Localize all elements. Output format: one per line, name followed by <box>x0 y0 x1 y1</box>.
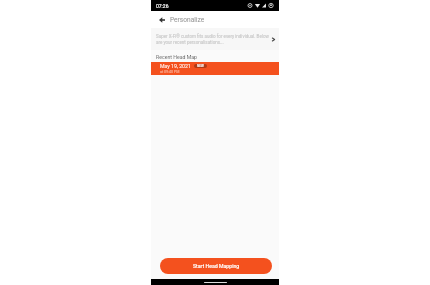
staticText: Start Head Mapping <box>193 263 240 269</box>
staticText: Recent Head Map <box>156 54 198 60</box>
button[interactable]: Super X-Fi® custom fits audio for every … <box>151 28 279 50</box>
staticText: May 19, 2021 <box>160 63 191 69</box>
button[interactable]: Start Head Mapping <box>160 258 272 274</box>
staticText: Super X-Fi® custom fits audio for every … <box>156 34 270 45</box>
staticText: NEW <box>197 64 204 68</box>
button[interactable]: More info <box>268 34 279 45</box>
staticText: 07:26 <box>156 3 169 9</box>
staticText: Personalize <box>170 16 205 24</box>
button[interactable]: May 19, 2021 <box>151 62 279 75</box>
button[interactable]: Back <box>154 12 169 27</box>
staticText: at 09:40 PM <box>160 70 180 74</box>
